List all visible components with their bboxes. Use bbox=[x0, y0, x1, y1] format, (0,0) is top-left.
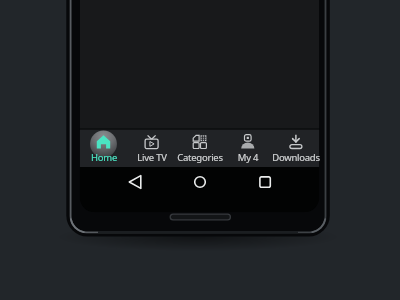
staticText: Downloads bbox=[266, 151, 326, 164]
staticText: My 4 bbox=[218, 151, 278, 164]
staticText: Live TV bbox=[122, 151, 182, 164]
staticText: Categories bbox=[170, 151, 230, 164]
staticText: Home bbox=[74, 151, 134, 164]
